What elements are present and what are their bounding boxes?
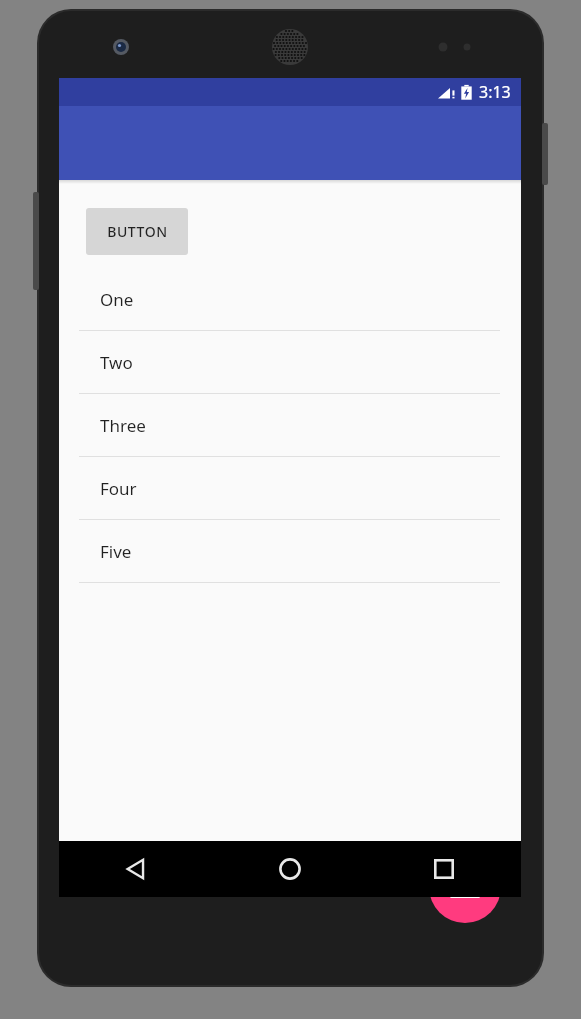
button[interactable]: Home	[213, 841, 367, 897]
staticText: BUTTON	[107, 222, 168, 241]
button[interactable]: Two	[59, 331, 521, 394]
staticText: One	[100, 288, 134, 311]
staticText: Two	[100, 351, 133, 374]
button[interactable]: Back	[59, 841, 213, 897]
staticText: Four	[100, 477, 137, 500]
button[interactable]: Compose email	[429, 851, 501, 923]
button[interactable]: Five	[59, 520, 521, 583]
button[interactable]: Recent apps	[367, 841, 521, 897]
button[interactable]: One	[59, 268, 521, 331]
button[interactable]: BUTTON	[86, 208, 188, 255]
staticText: 3:13	[479, 81, 511, 103]
button[interactable]: Four	[59, 457, 521, 520]
staticText: Five	[100, 540, 132, 563]
button[interactable]: Three	[59, 394, 521, 457]
staticText: Three	[100, 414, 146, 437]
